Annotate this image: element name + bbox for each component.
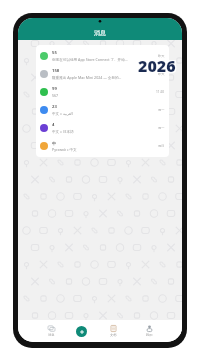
button[interactable]: 158 (36, 65, 169, 83)
staticText: 2026 (139, 56, 177, 78)
button[interactable]: 4 (36, 119, 169, 137)
staticText: 消息 (48, 333, 55, 337)
staticText: 您现在可以使用 App Store Connect 了。开始… (52, 57, 128, 62)
button[interactable]: 55 (36, 47, 169, 65)
button[interactable]: New translation (76, 326, 87, 337)
staticText: 中文 » العربية (52, 111, 73, 116)
staticText: 2026 (137, 54, 175, 76)
staticText: 昨天 (158, 54, 165, 58)
staticText: 2026 (139, 55, 177, 77)
staticText: Русский » 中文 (52, 147, 77, 152)
staticText: 我的 (146, 333, 153, 337)
button[interactable]: Profile (138, 325, 160, 337)
staticText: 2026 (138, 56, 176, 78)
staticText: 2026 (138, 55, 176, 77)
staticText: 55 (52, 50, 57, 56)
staticText: 昨天 (158, 72, 165, 76)
staticText: 158 (52, 68, 60, 74)
button[interactable]: Documents (102, 325, 124, 337)
staticText: 消息 (94, 29, 106, 37)
staticText: 文档 (110, 333, 117, 337)
staticText: 周一 (158, 108, 165, 112)
staticText: 99 (52, 86, 57, 92)
staticText: 2026 (137, 56, 175, 78)
staticText: 567 (52, 93, 59, 98)
staticText: 周一 (158, 126, 165, 130)
staticText: 隆重推出 Apple Mac Mini 2024 — 全新的… (52, 75, 122, 80)
staticText: 周日 (158, 144, 165, 148)
button[interactable]: 99 (36, 83, 169, 101)
staticText: 2026 (139, 54, 177, 76)
staticText: 23 (52, 104, 57, 110)
button[interactable]: Messages (40, 325, 62, 337)
button[interactable]: 中 (36, 137, 169, 155)
button[interactable]: 23 (36, 101, 169, 119)
staticText: 11:20 (156, 90, 165, 94)
staticText: 中 (52, 141, 57, 146)
staticText: 4 (52, 122, 55, 128)
staticText: 2026 (138, 54, 176, 76)
staticText: 2026 (137, 55, 175, 77)
staticText: 中文 » 日本語 (52, 129, 74, 134)
